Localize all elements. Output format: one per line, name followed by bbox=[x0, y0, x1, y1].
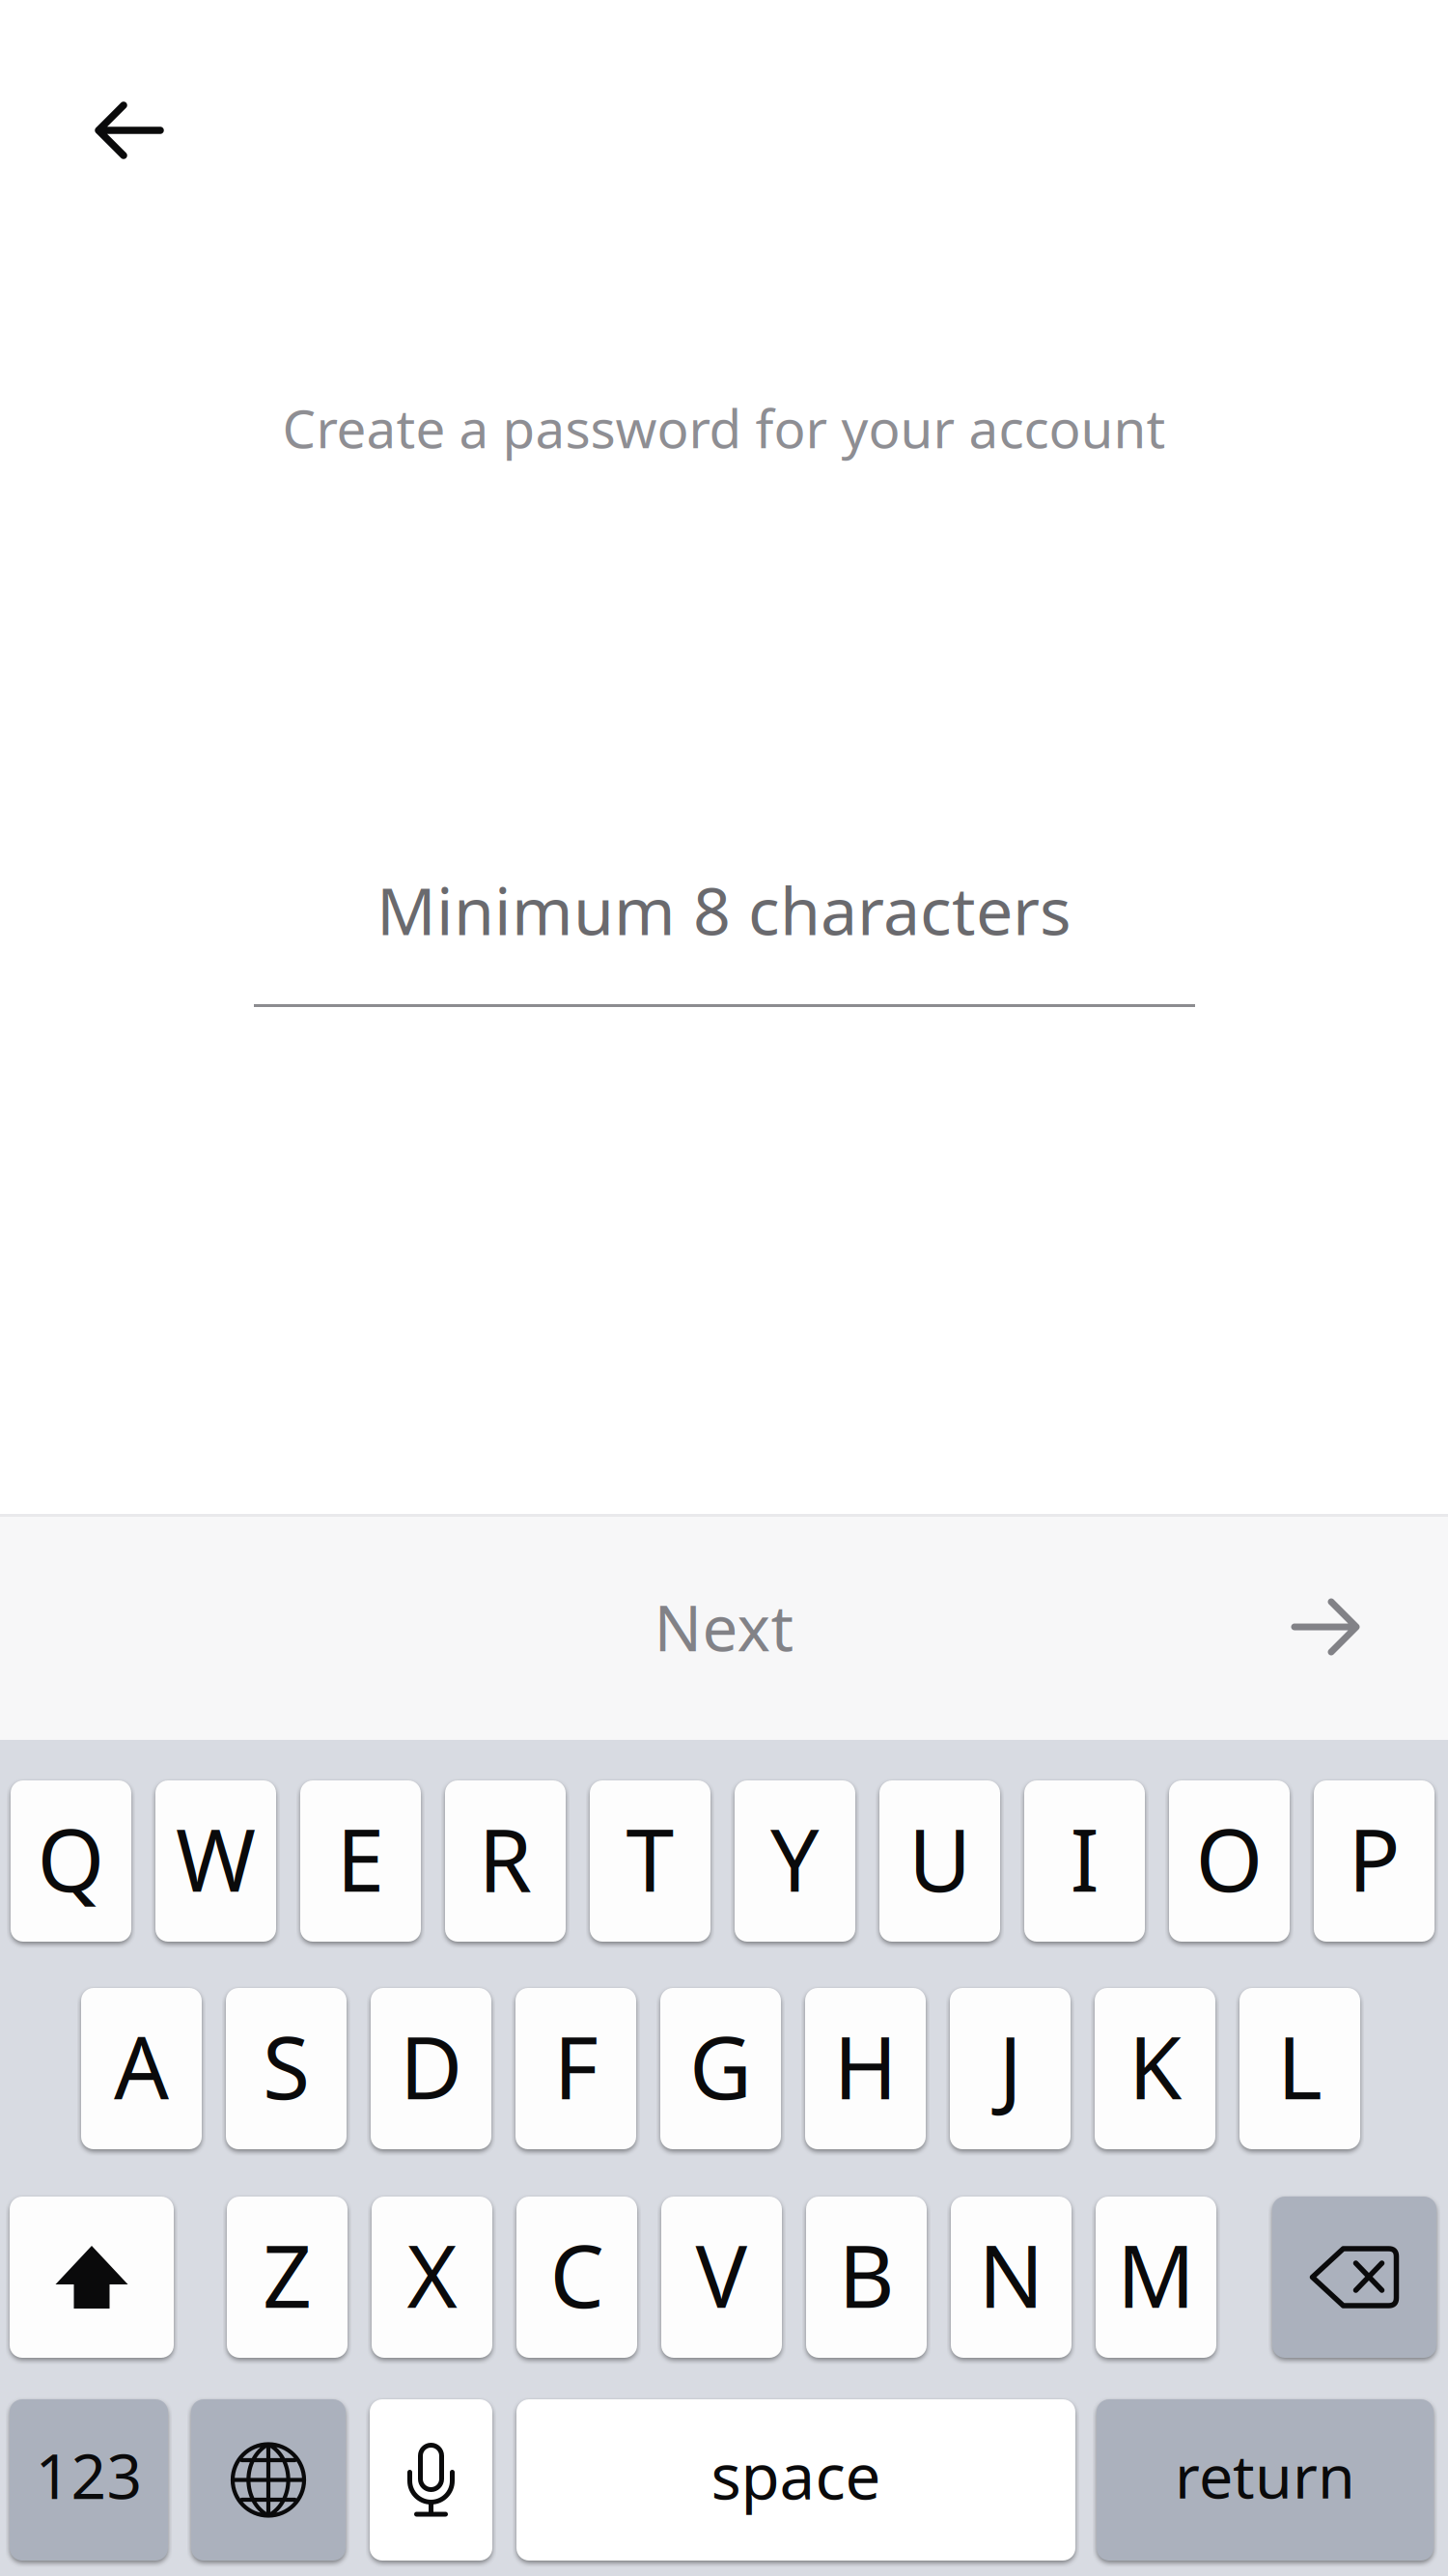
staticText: D bbox=[400, 2008, 462, 2123]
button[interactable]: T bbox=[590, 1780, 710, 1942]
button[interactable]: E bbox=[300, 1780, 421, 1942]
staticText: N bbox=[978, 2217, 1044, 2332]
button[interactable]: Next keyboard bbox=[191, 2399, 346, 2561]
button[interactable]: Back bbox=[62, 68, 197, 193]
button[interactable]: 123 bbox=[10, 2399, 168, 2561]
button[interactable]: L bbox=[1239, 1988, 1360, 2149]
button[interactable]: J bbox=[950, 1988, 1071, 2149]
button[interactable]: Y bbox=[735, 1780, 855, 1942]
staticText: Z bbox=[263, 2217, 312, 2332]
staticText: Q bbox=[37, 1801, 105, 1915]
staticText: Next bbox=[654, 1585, 794, 1669]
staticText: R bbox=[478, 1801, 532, 1915]
button[interactable]: B bbox=[806, 2197, 927, 2358]
button[interactable]: K bbox=[1095, 1988, 1215, 2149]
button[interactable]: D bbox=[371, 1988, 491, 2149]
button[interactable]: O bbox=[1169, 1780, 1290, 1942]
staticText: L bbox=[1277, 2008, 1323, 2123]
staticText: F bbox=[554, 2008, 598, 2123]
staticText: C bbox=[550, 2217, 604, 2332]
button[interactable]: X bbox=[372, 2197, 492, 2358]
button[interactable]: A bbox=[81, 1988, 202, 2149]
staticText: W bbox=[176, 1801, 256, 1915]
staticText: S bbox=[263, 2008, 310, 2123]
staticText: B bbox=[838, 2217, 894, 2332]
button[interactable]: G bbox=[660, 1988, 781, 2149]
staticText: Y bbox=[770, 1801, 820, 1915]
button[interactable]: Shift bbox=[10, 2197, 174, 2358]
button[interactable]: V bbox=[661, 2197, 782, 2358]
staticText: space bbox=[711, 2433, 881, 2517]
button[interactable]: Next bbox=[0, 1514, 1448, 1740]
staticText: P bbox=[1348, 1801, 1400, 1915]
staticText: V bbox=[696, 2217, 748, 2332]
button[interactable]: M bbox=[1096, 2197, 1216, 2358]
staticText: X bbox=[407, 2217, 457, 2332]
staticText: J bbox=[999, 2008, 1022, 2123]
button[interactable]: I bbox=[1024, 1780, 1145, 1942]
button[interactable]: return bbox=[1097, 2399, 1434, 2561]
staticText: O bbox=[1196, 1801, 1263, 1915]
staticText: E bbox=[336, 1801, 385, 1915]
button[interactable]: S bbox=[226, 1988, 347, 2149]
staticText: Minimum 8 characters bbox=[376, 866, 1072, 953]
button[interactable]: Delete bbox=[1272, 2197, 1436, 2358]
button[interactable]: H bbox=[805, 1988, 926, 2149]
staticText: K bbox=[1128, 2008, 1182, 2123]
button[interactable]: W bbox=[155, 1780, 276, 1942]
staticText: T bbox=[626, 1801, 674, 1915]
button[interactable]: U bbox=[879, 1780, 1000, 1942]
button[interactable]: N bbox=[951, 2197, 1072, 2358]
staticText: A bbox=[114, 2008, 169, 2123]
staticText: 123 bbox=[35, 2434, 142, 2516]
button[interactable]: C bbox=[516, 2197, 637, 2358]
staticText: G bbox=[689, 2008, 752, 2123]
button[interactable]: R bbox=[445, 1780, 566, 1942]
staticText: I bbox=[1070, 1801, 1099, 1915]
button[interactable]: Q bbox=[11, 1780, 131, 1942]
button[interactable]: Dictate bbox=[370, 2399, 492, 2561]
staticText: M bbox=[1117, 2217, 1195, 2332]
button[interactable]: Z bbox=[227, 2197, 348, 2358]
staticText: U bbox=[908, 1801, 971, 1915]
button[interactable]: P bbox=[1314, 1780, 1434, 1942]
button[interactable]: F bbox=[515, 1988, 636, 2149]
staticText: return bbox=[1175, 2435, 1355, 2515]
button[interactable]: space bbox=[516, 2399, 1075, 2561]
staticText: Create a password for your account bbox=[282, 393, 1166, 463]
staticText: H bbox=[834, 2008, 897, 2123]
